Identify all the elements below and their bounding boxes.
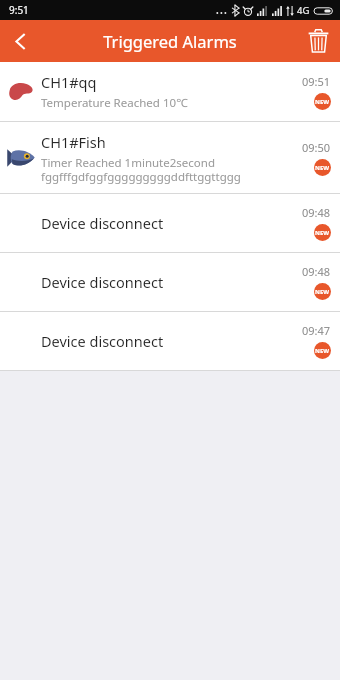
staticText: Triggered Alarms bbox=[103, 30, 237, 52]
other: New bbox=[314, 159, 331, 176]
staticText: CH1#Fish bbox=[41, 132, 106, 152]
staticText: Device disconnect bbox=[41, 331, 164, 351]
staticText: 09:48 bbox=[302, 205, 331, 220]
staticText: NEW bbox=[315, 288, 330, 296]
staticText: NEW bbox=[315, 347, 330, 355]
staticText: Device disconnect bbox=[41, 213, 164, 233]
other: New bbox=[314, 283, 331, 300]
staticText: NEW bbox=[315, 229, 330, 237]
staticText: 09:47 bbox=[302, 323, 331, 338]
staticText: 09:51 bbox=[302, 74, 331, 89]
button[interactable]: Device disconnect bbox=[0, 253, 340, 311]
button[interactable]: Device disconnect bbox=[0, 312, 340, 370]
other: New bbox=[314, 224, 331, 241]
button[interactable]: CH1#qq bbox=[0, 62, 340, 121]
staticText: 9:51 bbox=[9, 3, 29, 17]
other: New bbox=[314, 93, 331, 110]
staticText: Timer Reached 1minute2second fggfffgdfgg… bbox=[41, 155, 241, 184]
staticText: NEW bbox=[315, 98, 330, 106]
staticText: CH1#qq bbox=[41, 72, 97, 92]
staticText: Device disconnect bbox=[41, 272, 164, 292]
staticText: Temperature Reached 10℃ bbox=[41, 95, 188, 111]
button[interactable]: Back bbox=[0, 20, 40, 62]
staticText: NEW bbox=[315, 164, 330, 172]
staticText: 4G bbox=[297, 4, 310, 17]
staticText: 09:48 bbox=[302, 264, 331, 279]
button[interactable]: Device disconnect bbox=[0, 194, 340, 252]
button[interactable]: Delete all alarms bbox=[296, 20, 340, 62]
staticText: 09:50 bbox=[302, 140, 331, 155]
other: New bbox=[314, 342, 331, 359]
button[interactable]: CH1#Fish bbox=[0, 122, 340, 193]
